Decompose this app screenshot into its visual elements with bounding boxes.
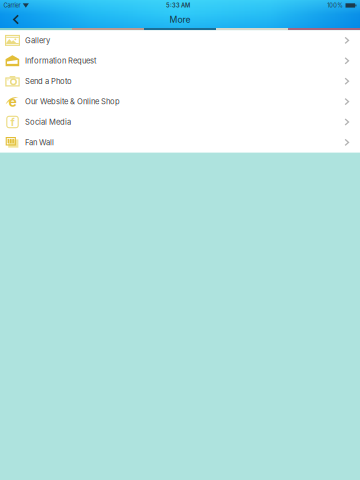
staticText: Send a Photo — [25, 77, 72, 86]
staticText: Social Media — [25, 117, 71, 127]
staticText: e — [8, 93, 16, 110]
staticText: Carrier — [3, 2, 20, 9]
button[interactable]: f — [0, 112, 360, 132]
staticText: 5:33 AM — [166, 2, 190, 9]
staticText: Fan Wall — [25, 138, 54, 147]
staticText: 100% — [327, 2, 343, 9]
button[interactable]: e — [0, 91, 360, 112]
staticText: Our Website & Online Shop — [25, 97, 120, 106]
button[interactable]: Back — [0, 11, 32, 28]
button[interactable]: Fan Wall — [0, 132, 360, 153]
staticText: f — [10, 115, 14, 128]
button[interactable]: Information Request — [0, 51, 360, 71]
staticText: More — [169, 14, 190, 25]
staticText: Information Request — [25, 56, 96, 65]
staticText: Gallery — [25, 36, 50, 45]
button[interactable]: Gallery — [0, 30, 360, 51]
button[interactable]: Send a Photo — [0, 71, 360, 91]
